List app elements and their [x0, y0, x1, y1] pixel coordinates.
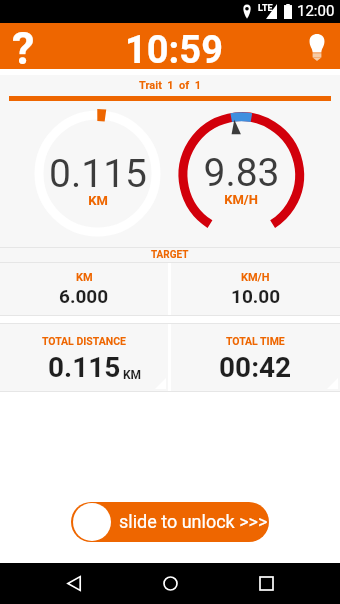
button[interactable]: Home [148, 563, 192, 604]
button[interactable]: Back [52, 563, 96, 604]
staticText: 10.00 [231, 285, 281, 307]
staticText: KM [123, 368, 142, 382]
staticText: KM/H [241, 271, 270, 284]
button[interactable]: Keep screen on [294, 23, 340, 69]
staticText: 10:59 [125, 28, 223, 73]
staticText: TOTAL DISTANCE [42, 335, 126, 347]
button[interactable]: TOTAL DISTANCE [0, 324, 168, 391]
button[interactable]: slide to unlock >>> [71, 502, 269, 542]
staticText: 6.000 [59, 285, 109, 307]
staticText: LTE [258, 3, 273, 14]
staticText: TOTAL TIME [226, 335, 285, 347]
staticText: 00:42 [219, 351, 292, 384]
button[interactable]: KM [0, 263, 168, 315]
button[interactable]: TOTAL TIME [171, 324, 340, 391]
button[interactable]: KM/H [171, 263, 340, 315]
button[interactable]: Recents [244, 563, 288, 604]
staticText: TARGET [151, 249, 189, 261]
staticText: slide to unlock >>> [119, 511, 268, 532]
staticText: KM [88, 193, 108, 208]
staticText: 12:00 [297, 2, 335, 20]
staticText: ? [12, 22, 35, 68]
staticText: Trait 1 of 1 [139, 79, 202, 92]
staticText: KM [76, 271, 93, 284]
staticText: 0.115 [48, 351, 121, 384]
staticText: KM/H [224, 192, 258, 207]
staticText: 9.83 [203, 150, 280, 196]
staticText: 0.115 [49, 151, 147, 197]
button[interactable]: Help [0, 23, 46, 69]
